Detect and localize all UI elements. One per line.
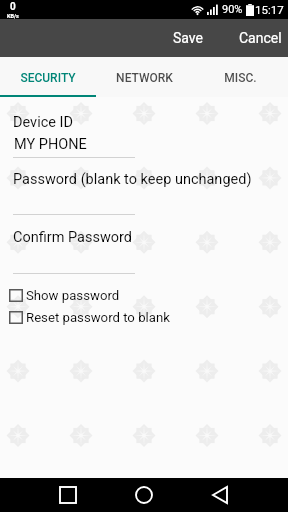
button[interactable]: Reset password to blank [0, 306, 288, 328]
staticText: 90% [222, 3, 243, 16]
staticText: MISC. [224, 71, 257, 85]
staticText: NETWORK [116, 71, 173, 85]
staticText: Password (blank to keep unchanged) [13, 171, 252, 188]
button[interactable]: Home [132, 483, 156, 507]
button[interactable]: Cancel [219, 21, 288, 55]
staticText: 15:17 [255, 3, 284, 16]
button[interactable]: NETWORK [96, 57, 192, 97]
staticText: Device ID [13, 114, 73, 131]
button[interactable]: MISC. [192, 57, 288, 97]
staticText: Confirm Password [13, 229, 133, 246]
staticText: Reset password to blank [26, 310, 170, 325]
staticText: MY PHONE [14, 136, 87, 153]
staticText: 0 [10, 1, 16, 13]
staticText: KB/s [7, 13, 19, 19]
staticText: Show password [26, 288, 120, 303]
button[interactable]: Show password [0, 284, 288, 306]
staticText: SECURITY [20, 71, 76, 85]
button[interactable]: Back [208, 483, 232, 507]
button[interactable]: SECURITY [0, 57, 96, 97]
staticText: Cancel [239, 30, 282, 46]
button[interactable]: Recents [56, 483, 80, 507]
staticText: Save [173, 30, 203, 46]
button[interactable]: Save [157, 21, 219, 55]
